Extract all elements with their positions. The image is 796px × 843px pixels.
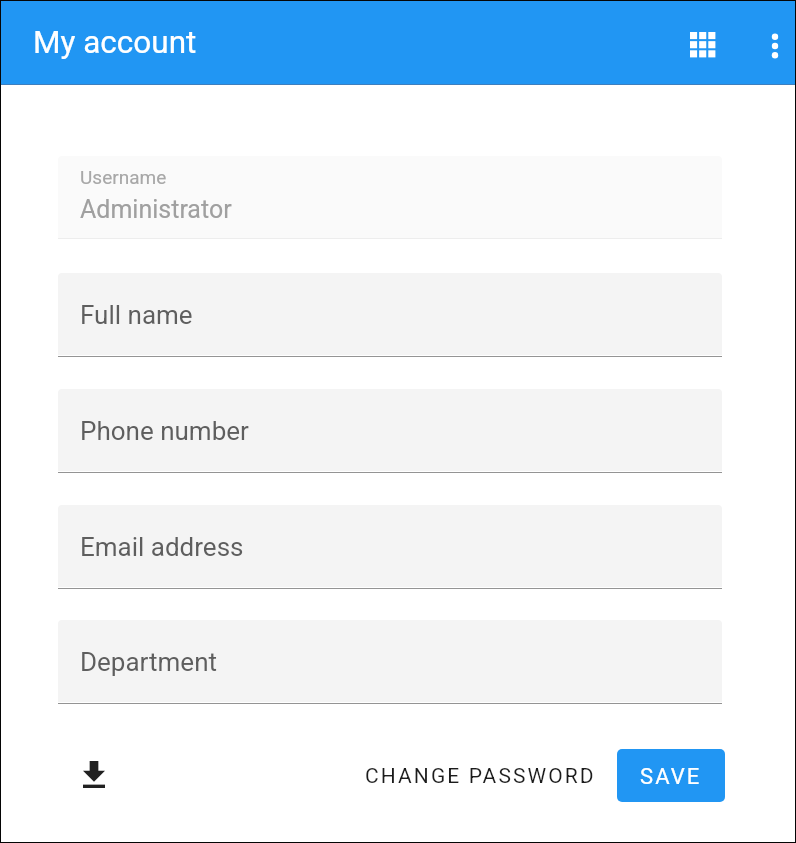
button[interactable]: Department [58, 620, 722, 704]
button[interactable]: Username [58, 156, 722, 239]
staticText: Phone number [80, 416, 249, 446]
staticText: Username [80, 166, 167, 188]
staticText: My account [33, 24, 197, 61]
button[interactable]: SAVE [617, 749, 725, 802]
button[interactable]: More options [749, 9, 796, 82]
button[interactable]: Full name [58, 273, 722, 357]
staticText: Administrator [80, 195, 232, 224]
button[interactable]: Phone number [58, 389, 722, 473]
staticText: Full name [80, 300, 193, 330]
staticText: CHANGE PASSWORD [365, 764, 596, 789]
button[interactable]: Apps [666, 8, 739, 81]
staticText: Department [80, 647, 217, 677]
button[interactable]: Email address [58, 505, 722, 589]
staticText: Email address [80, 532, 244, 562]
button[interactable]: CHANGE PASSWORD [351, 749, 610, 802]
staticText: SAVE [640, 764, 702, 790]
button[interactable]: Download [66, 747, 122, 803]
